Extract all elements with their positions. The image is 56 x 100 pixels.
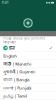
staticText: हिंदी — [9, 45, 15, 51]
button[interactable]: अ — [0, 44, 56, 52]
button[interactable]: ਪੰਜਾਬੀ | Punjabi — [0, 84, 56, 92]
staticText: ગુજરાતી | Gujarati — [3, 69, 35, 75]
staticText: अ — [4, 46, 6, 50]
staticText: ✓ — [49, 45, 53, 51]
button[interactable]: বাংলা | Bangla — [0, 76, 56, 84]
button[interactable]: मराठी | Marathi — [0, 60, 56, 68]
staticText: Please choose your preferred language — [3, 37, 45, 44]
staticText: ਪੰਜਾਬੀ | Punjabi — [3, 85, 31, 91]
staticText: English — [3, 53, 17, 59]
button[interactable]: ગુજરાતી | Gujarati — [0, 68, 56, 76]
button[interactable]: தமிழ் | Tamil — [0, 92, 56, 100]
staticText: 9:41 — [2, 1, 9, 4]
staticText: বাংলা | Bangla — [3, 77, 29, 83]
staticText: தமிழ் | Tamil — [3, 93, 27, 99]
button[interactable]: English — [0, 52, 56, 60]
staticText: मराठी | Marathi — [3, 61, 31, 67]
